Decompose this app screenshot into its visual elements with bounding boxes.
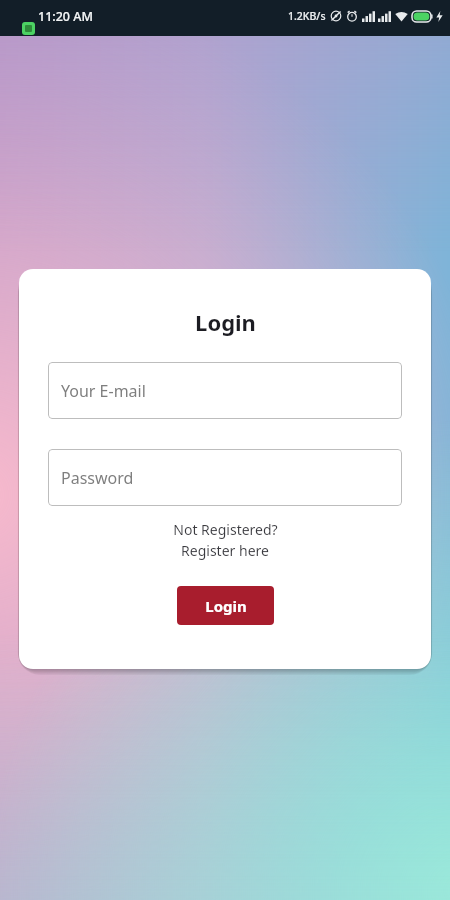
button[interactable]: Not Registered? [19,518,431,562]
staticText: Password [61,467,134,489]
staticText: Login [205,596,247,616]
staticText: 1.2KB/s [288,9,326,23]
staticText: Not Registered? [173,520,278,539]
staticText: Register here [181,541,269,560]
button[interactable]: Your E-mail input field [48,362,402,419]
staticText: Login [195,307,256,337]
staticText: 11:20 AM [38,8,93,25]
staticText: Your E-mail [61,380,146,402]
button[interactable]: Password input field [48,449,402,506]
button[interactable]: Login [177,586,274,625]
